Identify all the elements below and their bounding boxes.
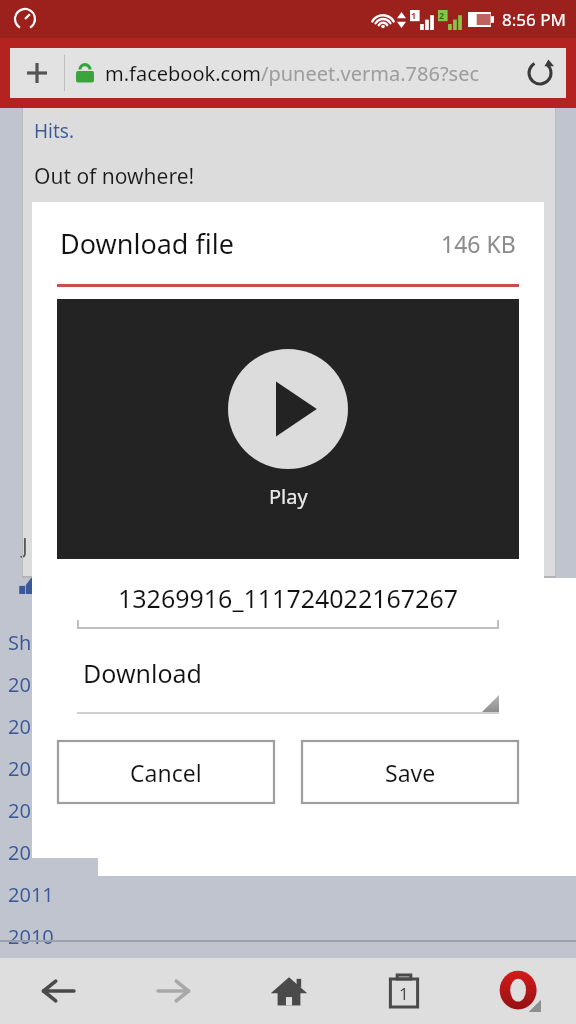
button[interactable]: Tabs [346, 958, 461, 1024]
button[interactable]: Download location [77, 656, 499, 714]
staticText: 20 [8, 839, 31, 866]
staticText: Download [83, 656, 202, 690]
staticText: Out of nowhere! [34, 162, 195, 191]
staticText: 1 [411, 9, 417, 21]
button[interactable]: Reload [514, 48, 566, 98]
button[interactable]: Forward [116, 958, 231, 1024]
staticText: Download file [60, 225, 441, 262]
button[interactable]: m.facebook.com [105, 60, 514, 87]
staticText: 146 KB [441, 228, 516, 259]
staticText: 2010 [8, 923, 54, 950]
staticText: Cancel [130, 757, 202, 788]
staticText: 20 [8, 797, 31, 824]
staticText: 2 [439, 9, 445, 21]
staticText: 13269916_111724022167267 [77, 581, 499, 615]
button[interactable]: Play video preview [57, 299, 519, 559]
button[interactable]: Home [231, 958, 346, 1024]
staticText: Play [269, 483, 308, 510]
staticText: 20 [8, 671, 31, 698]
staticText: 8:56 PM [502, 8, 566, 31]
staticText: Sh [8, 629, 32, 656]
staticText: Hits. [34, 118, 75, 144]
button[interactable]: Back [0, 958, 116, 1024]
staticText: 20 [8, 713, 31, 740]
staticText: Save [385, 757, 436, 788]
button[interactable]: Opera menu [461, 958, 576, 1024]
button[interactable]: New tab [10, 48, 64, 98]
button[interactable]: Cancel [57, 740, 275, 804]
staticText: J [22, 532, 28, 561]
staticText: /puneet.verma.786?sec [261, 60, 480, 87]
staticText: 1 [399, 982, 409, 1005]
button[interactable]: Save [301, 740, 519, 804]
staticText: 2011 [8, 881, 54, 908]
staticText: m.facebook.com [105, 60, 261, 87]
button[interactable]: 13269916_111724022167267 [77, 581, 499, 630]
staticText: 20 [8, 755, 31, 782]
